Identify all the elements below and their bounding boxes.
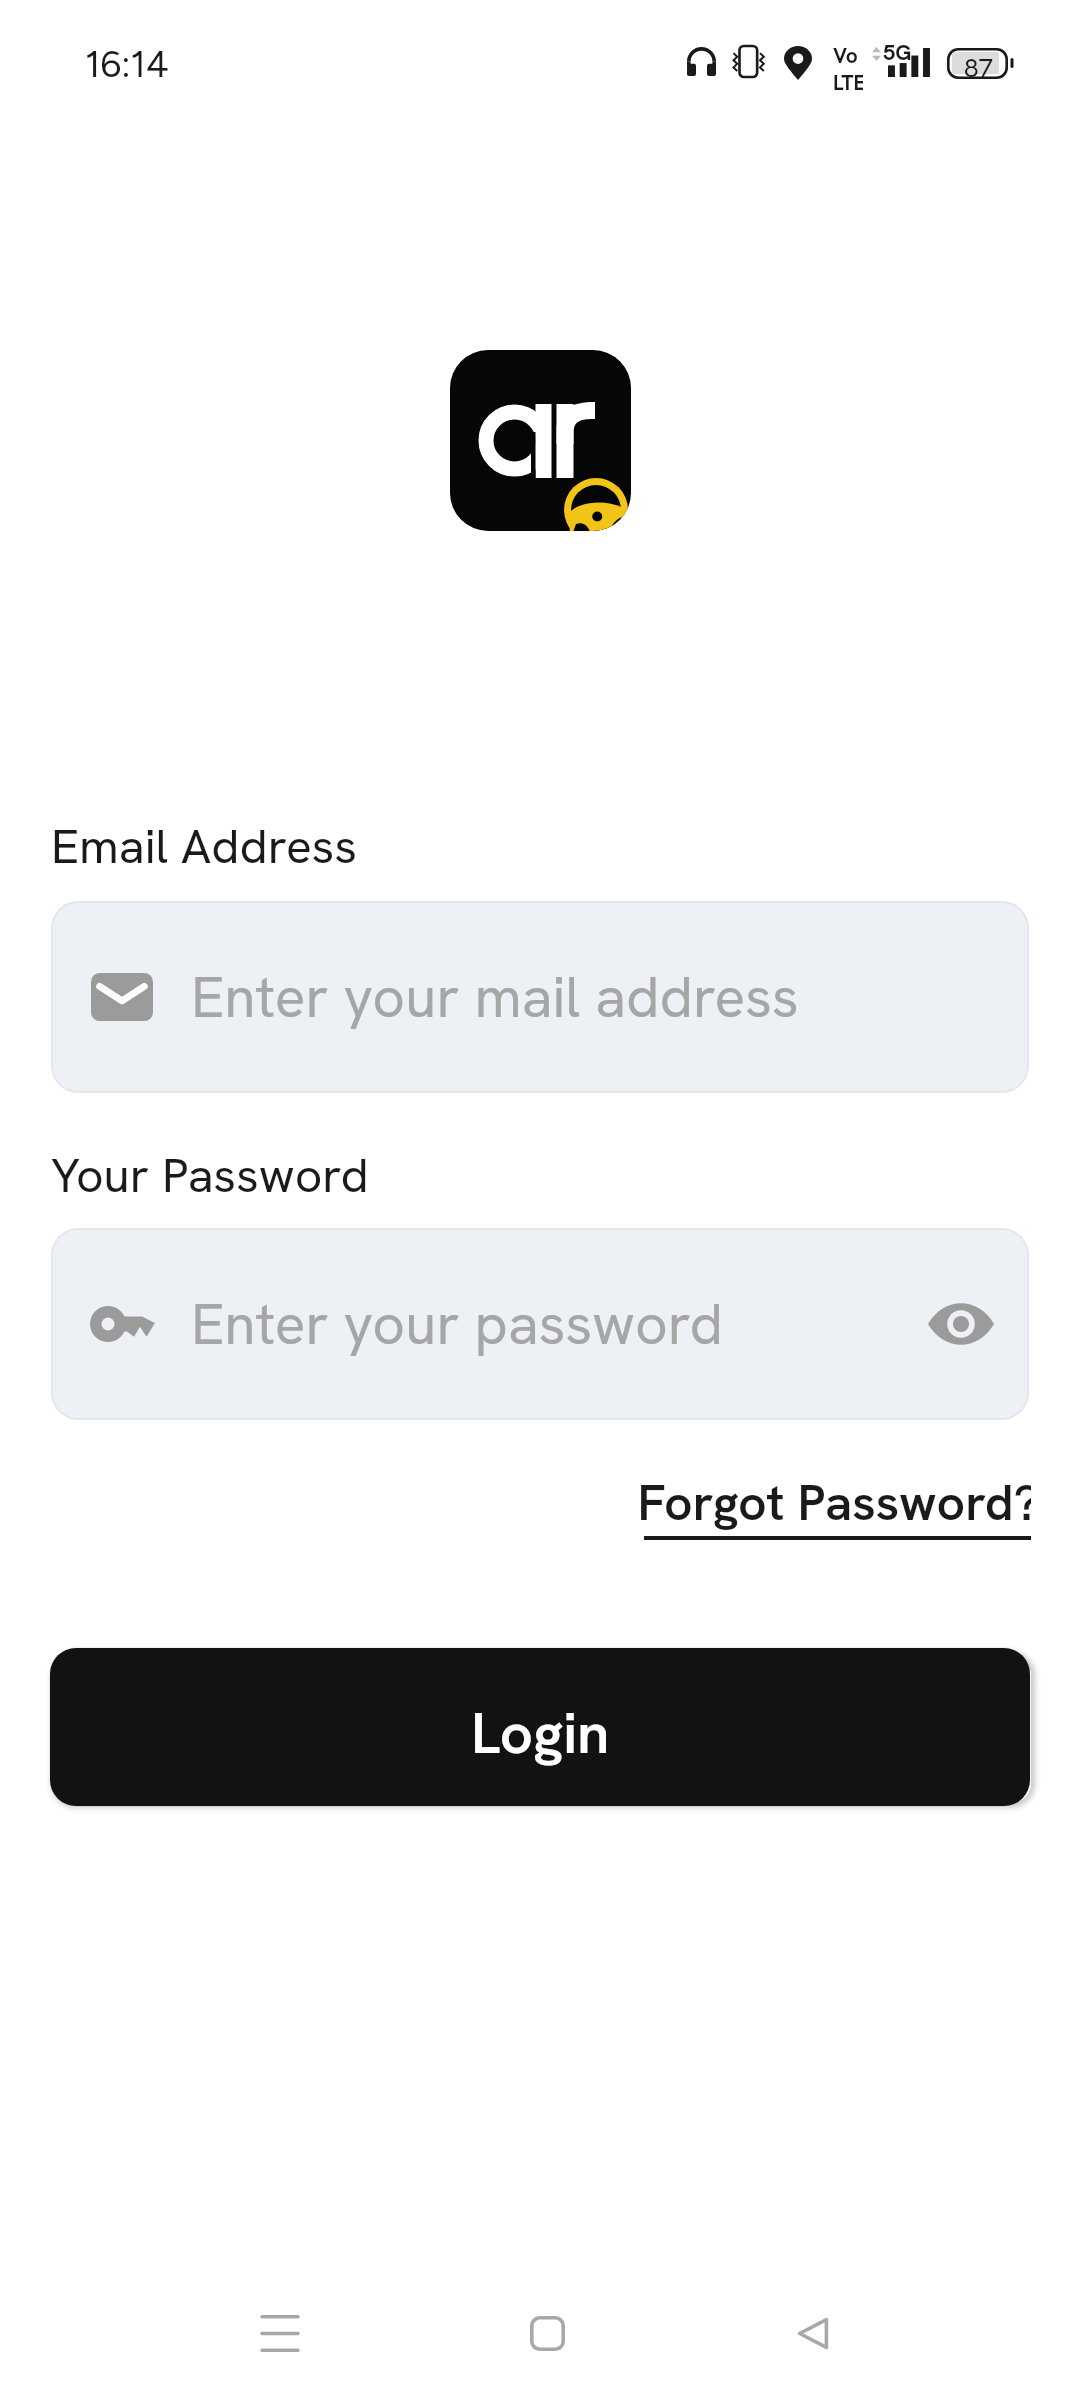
staticText: Enter your mail address — [191, 960, 799, 1034]
staticText: Login — [471, 1695, 610, 1771]
staticText: Vo — [833, 42, 858, 69]
staticText: 87 — [964, 51, 994, 82]
button[interactable]: Show password — [916, 1279, 1006, 1369]
staticText: Enter your password — [191, 1287, 723, 1361]
button[interactable]: Recent apps — [230, 2283, 330, 2383]
button[interactable]: Login — [50, 1648, 1030, 1806]
staticText: Email Address — [51, 815, 357, 878]
staticText: Forgot Password? — [637, 1470, 1031, 1535]
button[interactable]: Forgot Password? — [637, 1470, 1031, 1540]
staticText: 5G — [883, 38, 912, 67]
button[interactable]: Home — [497, 2283, 597, 2383]
button[interactable]: Enter your password — [51, 1228, 1029, 1420]
button[interactable]: Enter your mail address — [51, 901, 1029, 1093]
staticText: LTE — [833, 69, 863, 96]
staticText: Your Password — [51, 1144, 369, 1207]
staticText: 16:14 — [85, 42, 169, 86]
button[interactable]: Back — [763, 2283, 863, 2383]
